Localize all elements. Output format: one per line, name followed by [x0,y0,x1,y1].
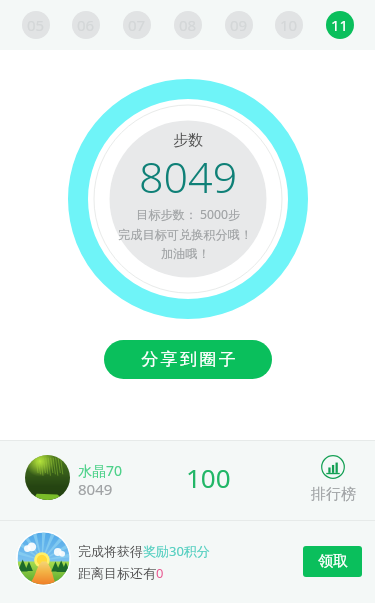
staticText: 目标步数： 5000步 [136,206,241,223]
staticText: 完成目标可兑换积分哦！ [118,227,253,242]
staticText: 距离目标还有0 [78,564,164,582]
staticText: 排行榜 [311,485,356,504]
staticText: 加油哦！ [161,246,210,261]
staticText: 8049 [78,479,113,499]
button[interactable]: 完成将获得奖励30积分 [0,521,375,603]
staticText: 08 [179,15,197,35]
button[interactable]: 水晶70 [0,441,375,520]
button[interactable]: 07 [123,11,151,39]
button[interactable]: 05 [22,11,50,39]
staticText: 11 [331,15,349,35]
staticText: 完成将获得奖励30积分 [78,542,210,560]
button[interactable]: 08 [174,11,202,39]
button[interactable]: 09 [225,11,253,39]
staticText: 05 [27,15,45,35]
button[interactable]: 11 [326,11,354,39]
staticText: 分享到圈子 [140,349,237,370]
staticText: 步数 [173,131,203,150]
staticText: 水晶70 [78,461,123,480]
staticText: 8049 [139,147,238,206]
staticText: 07 [128,15,146,35]
staticText: 100 [186,460,231,495]
button[interactable]: 领取 [303,546,362,577]
staticText: 09 [230,15,248,35]
button[interactable]: 分享到圈子 [104,340,272,379]
button[interactable]: 06 [72,11,100,39]
button[interactable]: 排行榜 [305,455,361,504]
staticText: 10 [280,15,298,35]
staticText: 06 [77,15,95,35]
button[interactable]: 10 [275,11,303,39]
staticText: 领取 [318,552,348,571]
